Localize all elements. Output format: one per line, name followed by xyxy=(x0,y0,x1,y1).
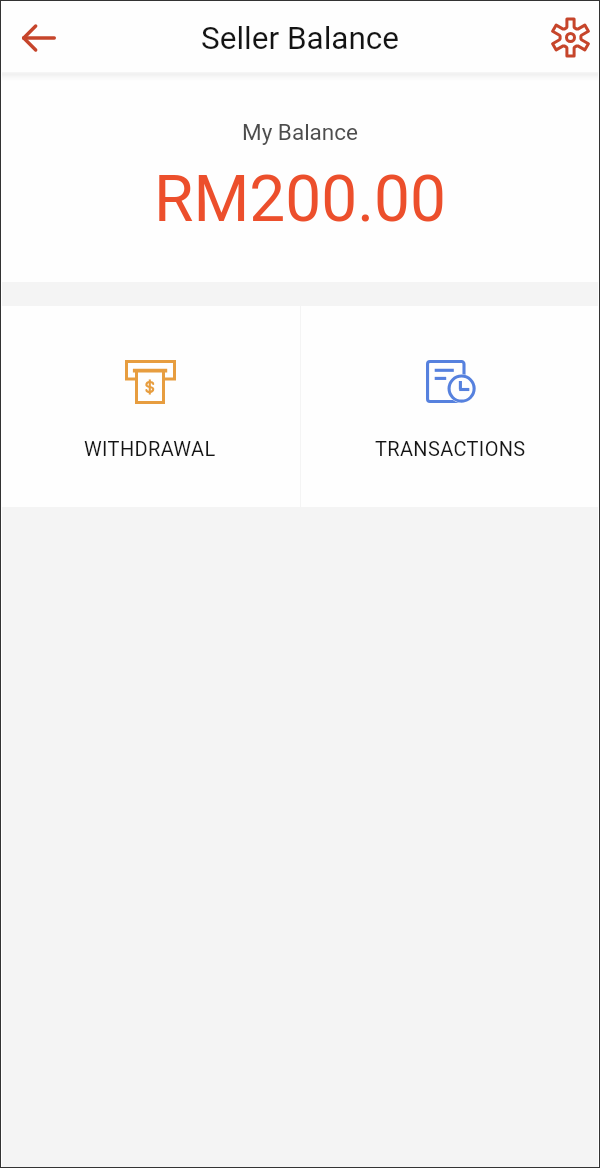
button[interactable]: WITHDRAWAL xyxy=(0,306,300,507)
staticText: RM200.00 xyxy=(154,162,447,237)
staticText: My Balance xyxy=(242,119,358,145)
staticText: TRANSACTIONS xyxy=(375,437,526,460)
staticText: WITHDRAWAL xyxy=(84,437,216,460)
staticText: Seller Balance xyxy=(201,20,400,57)
button[interactable]: TRANSACTIONS xyxy=(301,306,600,507)
button[interactable]: Settings xyxy=(541,9,599,67)
button[interactable]: Back xyxy=(5,4,73,72)
